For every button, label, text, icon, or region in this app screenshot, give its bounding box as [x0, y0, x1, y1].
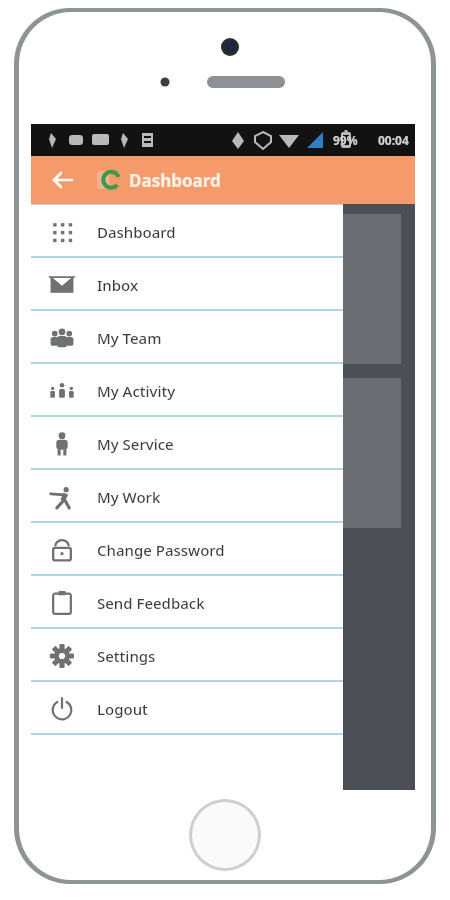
- staticText: My Service: [97, 434, 174, 454]
- button[interactable]: Change Password: [31, 523, 343, 576]
- button[interactable]: Back: [45, 163, 79, 197]
- button[interactable]: Settings: [31, 629, 343, 682]
- staticText: Logout: [97, 699, 148, 719]
- staticText: Settings: [97, 646, 156, 666]
- button[interactable]: Dashboard: [31, 205, 343, 258]
- staticText: 00:04: [378, 132, 409, 148]
- button[interactable]: My Work: [31, 470, 343, 523]
- staticText: Dashboard: [97, 222, 176, 242]
- staticText: My Activity: [97, 381, 176, 401]
- staticText: Vishal Airser: [131, 146, 226, 168]
- button[interactable]: Vishal Airser: [31, 156, 343, 205]
- button[interactable]: Send Feedback: [31, 576, 343, 629]
- staticText: Change Password: [97, 540, 225, 560]
- staticText: Inbox: [97, 275, 139, 295]
- staticText: My Team: [97, 328, 162, 348]
- button[interactable]: My Activity: [31, 364, 343, 417]
- button[interactable]: Inbox: [31, 258, 343, 311]
- staticText: (4): [41, 280, 58, 298]
- staticText: 99%: [333, 132, 358, 148]
- staticText: 99%: [333, 132, 358, 148]
- staticText: My Work: [97, 487, 161, 507]
- button[interactable]: My Service: [31, 417, 343, 470]
- staticText: Send Feedback: [97, 593, 205, 613]
- button[interactable]: My Team: [31, 311, 343, 364]
- button[interactable]: Logout: [31, 682, 343, 735]
- staticText: 00:04: [378, 132, 409, 148]
- staticText: Dashboard: [129, 169, 221, 192]
